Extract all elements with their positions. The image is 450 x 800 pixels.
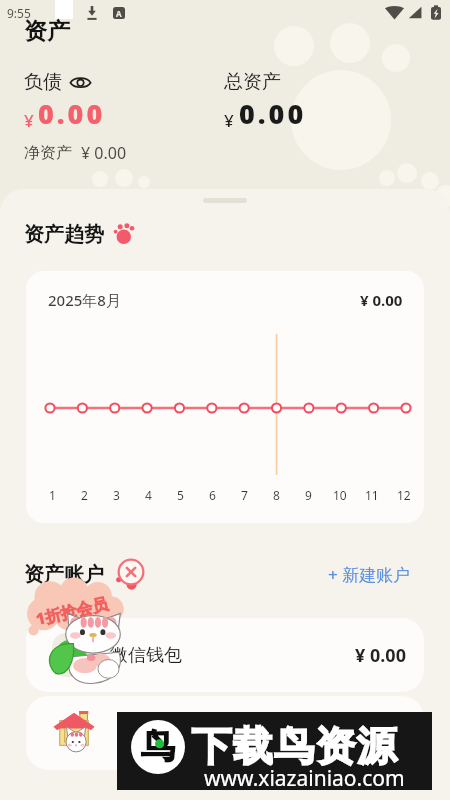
staticText: 净资产 xyxy=(24,143,72,163)
staticText: 1 xyxy=(49,487,56,503)
staticText: 资产趋势 xyxy=(24,222,104,247)
staticText: 负债 xyxy=(24,70,62,94)
staticText: 2025年8月 xyxy=(48,290,121,310)
staticText: 资产 xyxy=(24,17,70,46)
staticText: ¥ xyxy=(24,109,34,132)
button[interactable] xyxy=(26,696,424,770)
staticText: 9 xyxy=(305,487,312,503)
button[interactable]: Toggle amount visibility xyxy=(69,76,92,89)
staticText: 微信钱包 xyxy=(110,644,182,667)
staticText: 0.00 xyxy=(38,95,106,132)
staticText: 1折抢会员 xyxy=(33,592,111,630)
staticText: 总资产 xyxy=(224,70,281,94)
staticText: 下载鸟资源 xyxy=(191,721,397,771)
staticText: 0.00 xyxy=(239,95,307,132)
staticText: 4 xyxy=(145,487,152,503)
staticText: 5 xyxy=(177,487,184,503)
staticText: 9:55 xyxy=(7,5,31,21)
staticText: + 新建账户 xyxy=(328,563,411,586)
staticText: ¥ xyxy=(224,109,234,132)
staticText: www.xiazainiao.com xyxy=(204,764,405,793)
staticText: 11 xyxy=(365,487,379,503)
staticText: 10 xyxy=(333,487,347,503)
staticText: 资产账户 xyxy=(24,562,104,587)
staticText: 12 xyxy=(397,487,411,503)
staticText: 2 xyxy=(81,487,88,503)
staticText: ¥ 0.00 xyxy=(81,142,127,164)
staticText: A xyxy=(116,8,122,19)
button[interactable]: + 新建账户 xyxy=(328,563,411,586)
staticText: 3 xyxy=(113,487,120,503)
staticText: 鸟 xyxy=(141,725,175,768)
staticText: ¥ 0.00 xyxy=(355,643,406,668)
staticText: 8 xyxy=(273,487,280,503)
button[interactable]: Close advertisement xyxy=(117,558,145,586)
staticText: 7 xyxy=(241,487,248,503)
button[interactable]: 微信钱包 xyxy=(26,618,424,692)
staticText: ¥ 0.00 xyxy=(360,290,403,310)
staticText: 6 xyxy=(209,487,216,503)
